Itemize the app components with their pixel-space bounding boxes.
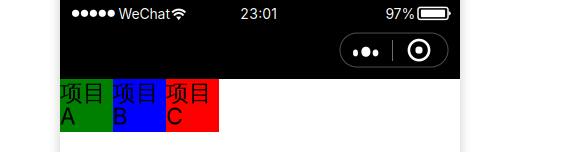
- button[interactable]: Menu: [340, 33, 448, 67]
- button[interactable]: 项目 A: [60, 79, 113, 132]
- staticText: 项目 B: [113, 79, 159, 130]
- staticText: 97%: [385, 5, 415, 22]
- staticText: 项目 C: [166, 79, 212, 130]
- staticText: 项目 A: [60, 79, 106, 130]
- button[interactable]: 项目 B: [113, 79, 166, 132]
- button[interactable]: 项目 C: [166, 79, 219, 132]
- staticText: WeChat: [118, 5, 170, 22]
- staticText: 23:01: [240, 5, 277, 22]
